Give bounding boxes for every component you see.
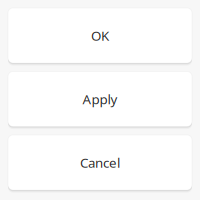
- staticText: Apply: [82, 90, 117, 108]
- button[interactable]: OK: [8, 8, 192, 63]
- staticText: Cancel: [80, 154, 120, 171]
- button[interactable]: Apply: [8, 71, 192, 126]
- staticText: OK: [91, 27, 109, 44]
- button[interactable]: Cancel: [8, 135, 192, 190]
